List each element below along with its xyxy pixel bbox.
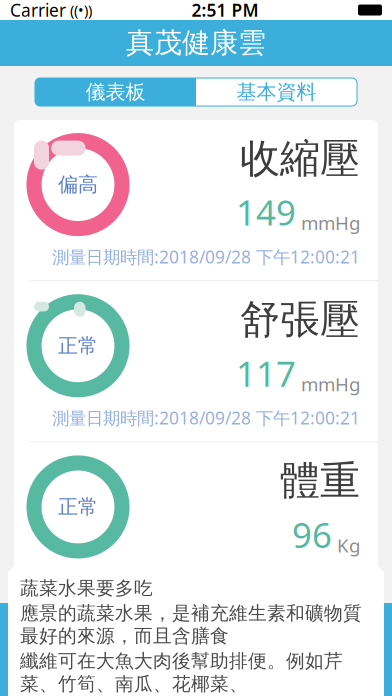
staticText: mmHg xyxy=(301,210,360,235)
staticText: 基本資料 xyxy=(236,80,316,104)
staticText: 117 xyxy=(236,350,296,396)
staticText: 正常 xyxy=(58,495,98,519)
button[interactable]: 儀表板 xyxy=(35,78,196,106)
staticText: 偏高 xyxy=(58,172,98,197)
staticText: 儀表板 xyxy=(85,80,145,104)
button[interactable]: 基本資料 xyxy=(196,78,357,106)
staticText: 測量日期時間:2018/09/27 下午17:16:59 xyxy=(52,567,360,590)
staticText: 舒張壓 xyxy=(240,295,360,344)
staticText: ((•)) xyxy=(66,0,92,20)
staticText: 纖維可在大魚大肉後幫助排便。例如芹菜、竹筍、南瓜、花椰菜、 xyxy=(20,650,343,695)
staticText: 2:51 PM xyxy=(191,0,258,21)
staticText: Kg xyxy=(337,533,360,557)
staticText: 正常 xyxy=(58,333,98,358)
staticText: Carrier xyxy=(10,0,66,21)
staticText: 149 xyxy=(236,189,296,235)
staticText: 真茂健康雲 xyxy=(126,26,266,60)
staticText: 測量日期時間:2018/09/28 下午12:00:21 xyxy=(52,406,360,429)
staticText: 測量日期時間:2018/09/28 下午12:00:21 xyxy=(52,245,360,268)
staticText: mmHg xyxy=(301,372,360,396)
staticText: 蔬菜水果要多吃 xyxy=(20,577,153,600)
staticText: 應景的蔬菜水果，是補充維生素和礦物質最好的來源，而且含膳食 xyxy=(20,602,362,648)
staticText: 體重 xyxy=(280,456,360,505)
staticText: 96 xyxy=(292,511,332,557)
staticText: 收縮壓 xyxy=(240,134,360,183)
